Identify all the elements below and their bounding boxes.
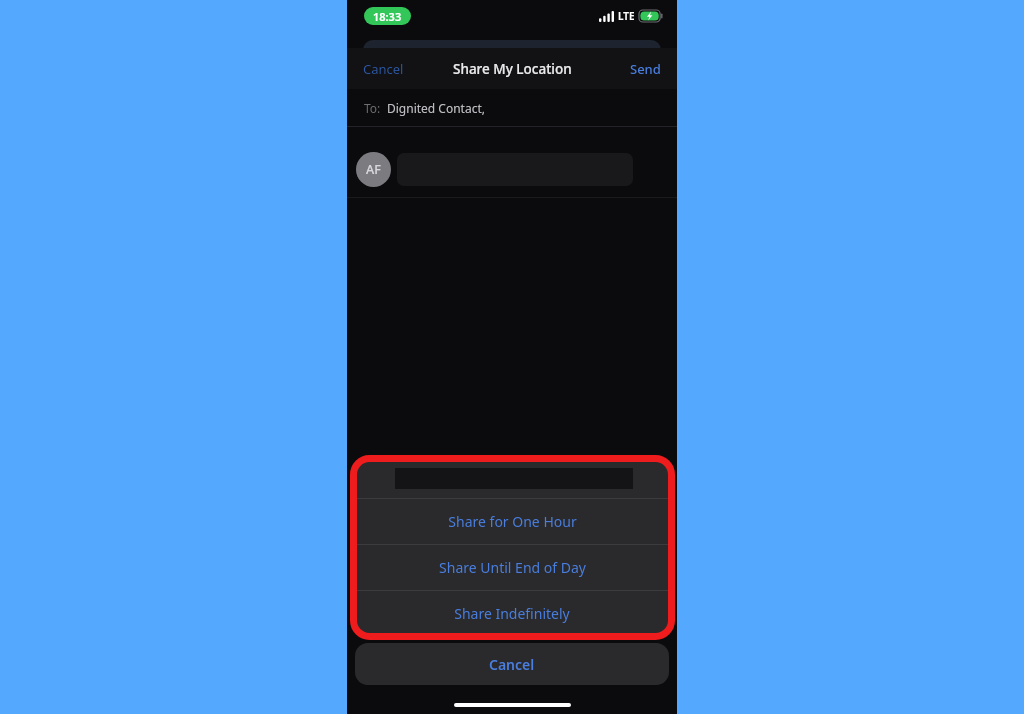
staticText: To: bbox=[364, 100, 381, 116]
button[interactable]: To: bbox=[347, 89, 677, 126]
button[interactable]: Cancel bbox=[355, 54, 412, 84]
button[interactable]: Share Until End of Day bbox=[355, 545, 669, 590]
staticText: Share Indefinitely bbox=[454, 604, 570, 623]
staticText: LTE bbox=[618, 9, 635, 23]
button[interactable]: Send bbox=[622, 54, 669, 84]
staticText: Share for One Hour bbox=[448, 512, 577, 531]
staticText: AF bbox=[366, 161, 381, 178]
staticText: Share My Location bbox=[453, 60, 572, 78]
button[interactable]: Share for One Hour bbox=[355, 499, 669, 544]
staticText: Cancel bbox=[489, 655, 535, 674]
staticText: Cancel bbox=[363, 60, 404, 78]
button[interactable]: Share Indefinitely bbox=[355, 591, 669, 636]
button[interactable]: Cancel bbox=[355, 643, 669, 685]
staticText: Dignited Contact, bbox=[387, 100, 485, 116]
staticText: Share Until End of Day bbox=[439, 558, 586, 577]
staticText: 18:33 bbox=[373, 9, 402, 24]
staticText: Send bbox=[630, 60, 661, 78]
